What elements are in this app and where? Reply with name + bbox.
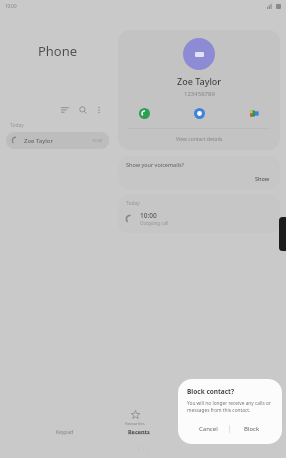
button[interactable]: View contact details bbox=[118, 133, 280, 146]
button[interactable]: Show bbox=[253, 173, 272, 184]
button[interactable]: Search bbox=[77, 104, 89, 116]
other: Contact photo bbox=[183, 38, 215, 70]
staticText: Today bbox=[126, 200, 140, 207]
button[interactable]: Message bbox=[191, 105, 207, 121]
staticText: Block bbox=[244, 425, 260, 433]
button[interactable]: Favourites bbox=[125, 410, 145, 426]
button[interactable]: Recents bbox=[128, 428, 150, 435]
staticText: Recents bbox=[128, 428, 150, 435]
staticText: 10:00 bbox=[140, 211, 157, 220]
staticText: Zoe Taylor bbox=[24, 137, 92, 145]
staticText: Outgoing call bbox=[140, 220, 169, 226]
button[interactable] bbox=[205, 410, 214, 419]
button[interactable]: Call bbox=[136, 105, 152, 121]
staticText: Show your voicemails? bbox=[126, 161, 184, 168]
button[interactable]: Edge panel handle bbox=[279, 217, 286, 251]
staticText: Keypad bbox=[56, 429, 74, 436]
button[interactable]: Block bbox=[230, 422, 273, 436]
staticText: Favourites bbox=[125, 421, 145, 426]
staticText: Block contact? bbox=[187, 387, 235, 396]
staticText: Today bbox=[10, 122, 24, 129]
staticText: 10:00 bbox=[92, 138, 103, 143]
button[interactable]: Keypad bbox=[56, 429, 74, 436]
staticText: Phone bbox=[0, 42, 115, 60]
button[interactable]: Zoe Taylor bbox=[6, 132, 109, 149]
staticText: 10:00 bbox=[5, 3, 17, 9]
staticText: View contact details bbox=[176, 136, 223, 143]
button[interactable]: Cancel bbox=[187, 422, 229, 436]
button[interactable]: Filter bbox=[59, 104, 71, 116]
button[interactable]: More options bbox=[93, 104, 105, 116]
button[interactable]: Video call bbox=[246, 105, 262, 121]
staticText: You will no longer receive any calls or … bbox=[187, 400, 273, 414]
staticText: Zoe Taylor bbox=[177, 75, 222, 87]
staticText: Show bbox=[255, 175, 270, 182]
staticText: 123456789 bbox=[184, 90, 215, 98]
button[interactable]: 10:00 bbox=[126, 211, 272, 226]
staticText: Cancel bbox=[199, 425, 218, 433]
